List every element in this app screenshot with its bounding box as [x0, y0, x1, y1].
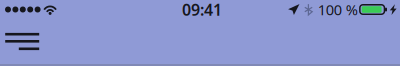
- staticText: 100 %: [318, 0, 358, 19]
- button[interactable]: Menu: [0, 19, 44, 64]
- staticText: 09:41: [182, 0, 222, 20]
